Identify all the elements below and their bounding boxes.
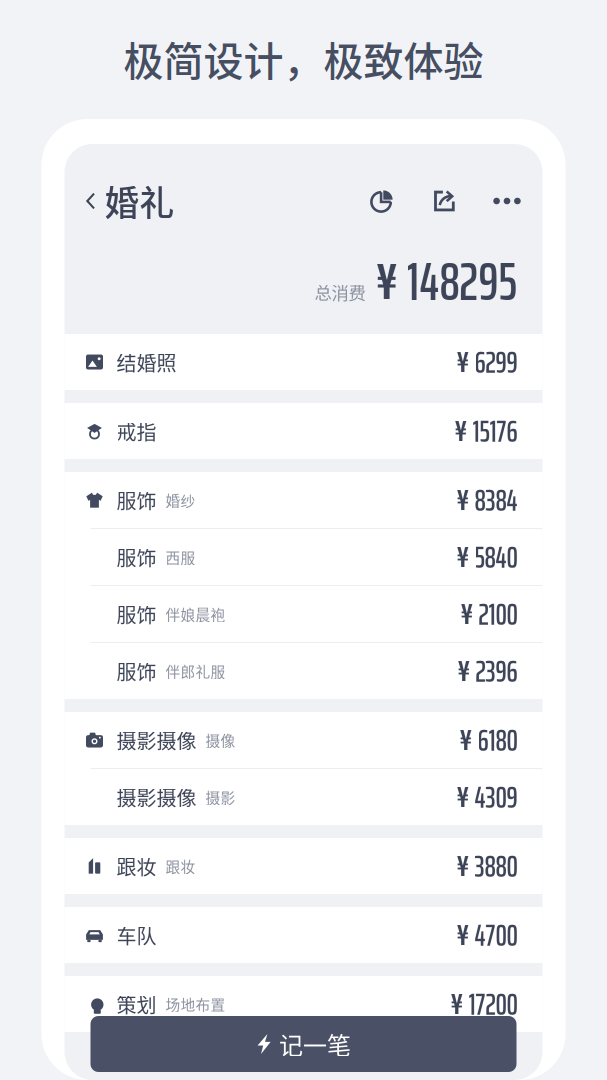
staticText: 跟妆 xyxy=(116,851,156,880)
button[interactable]: 跟妆 xyxy=(64,838,542,894)
staticText: ¥ xyxy=(450,981,463,1027)
staticText: 伴郎礼服 xyxy=(165,660,225,682)
staticText: ¥ xyxy=(456,339,469,385)
button[interactable]: 记一笔 xyxy=(90,1016,516,1072)
staticText: 2100 xyxy=(478,590,517,638)
staticText: 服饰 xyxy=(116,599,156,628)
staticText: ¥ xyxy=(456,912,469,958)
staticText: ¥ xyxy=(459,717,472,763)
staticText: 服饰 xyxy=(116,485,156,514)
staticText: ¥ xyxy=(456,774,469,820)
staticText: ¥ xyxy=(456,534,469,580)
staticText: 结婚照 xyxy=(116,347,176,376)
staticText: 服饰 xyxy=(116,656,156,685)
staticText: 8384 xyxy=(474,476,517,524)
button[interactable]: 服饰 xyxy=(64,472,542,528)
staticText: 摄影摄像 xyxy=(116,782,196,811)
staticText: 6299 xyxy=(474,338,517,386)
staticText: 4700 xyxy=(474,911,517,959)
button[interactable]: 策划 xyxy=(64,976,542,1032)
staticText: 15176 xyxy=(472,407,517,455)
staticText: 3880 xyxy=(474,842,517,890)
staticText: 跟妆 xyxy=(165,855,195,877)
staticText: 6180 xyxy=(477,716,517,764)
button[interactable]: Statistics xyxy=(369,188,394,213)
button[interactable]: More xyxy=(493,188,520,213)
button[interactable]: 服饰 xyxy=(64,586,542,642)
button[interactable]: 婚礼 xyxy=(84,176,174,226)
staticText: 西服 xyxy=(165,546,195,568)
staticText: 记一笔 xyxy=(279,1027,351,1061)
staticText: 婚纱 xyxy=(165,489,195,511)
staticText: 场地布置 xyxy=(165,993,225,1015)
button[interactable]: 摄影摄像 xyxy=(64,769,542,825)
button[interactable]: 摄影摄像 xyxy=(64,712,542,768)
staticText: ¥ xyxy=(460,591,473,637)
staticText: 摄像 xyxy=(205,729,235,751)
staticText: ¥ xyxy=(456,477,469,523)
staticText: 5840 xyxy=(474,533,517,581)
staticText: 戒指 xyxy=(116,416,156,445)
button[interactable]: 戒指 xyxy=(64,403,542,459)
staticText: 总消费 xyxy=(314,279,365,305)
button[interactable]: 结婚照 xyxy=(64,334,542,390)
staticText: 17200 xyxy=(468,980,517,1028)
staticText: 婚礼 xyxy=(104,176,174,226)
staticText: 伴娘晨袍 xyxy=(165,603,225,625)
button[interactable]: 车队 xyxy=(64,907,542,963)
button[interactable]: 服饰 xyxy=(64,643,542,699)
staticText: ¥ xyxy=(456,843,469,889)
staticText: 2396 xyxy=(475,647,517,695)
button[interactable]: Share xyxy=(432,188,457,213)
staticText: 摄影 xyxy=(205,786,235,808)
staticText: ¥ xyxy=(454,408,467,454)
staticText: 摄影摄像 xyxy=(116,725,196,754)
staticText: 车队 xyxy=(116,920,156,949)
staticText: 148295 xyxy=(406,238,517,324)
staticText: ¥ xyxy=(375,241,397,321)
staticText: ¥ xyxy=(457,648,470,694)
button[interactable]: 服饰 xyxy=(64,529,542,585)
staticText: 极简设计，极致体验 xyxy=(123,29,483,87)
staticText: 策划 xyxy=(116,989,156,1018)
staticText: 服饰 xyxy=(116,542,156,571)
staticText: 4309 xyxy=(474,773,517,821)
